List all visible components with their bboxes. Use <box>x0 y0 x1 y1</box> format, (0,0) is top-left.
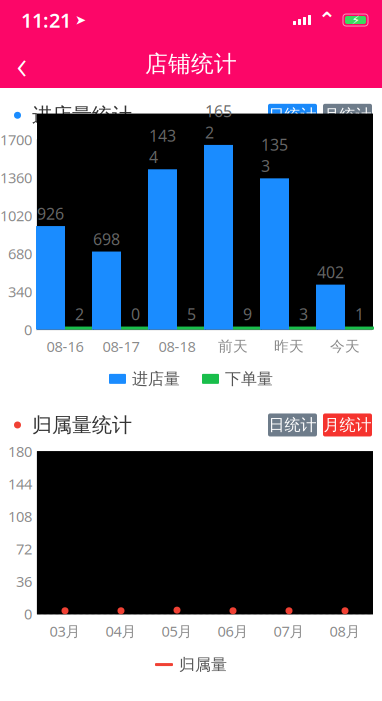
staticText: 0 <box>131 303 140 324</box>
staticText: 店铺统计 <box>145 50 237 78</box>
staticText: 07月 <box>273 621 304 641</box>
staticText: ⚡︎ <box>351 13 359 27</box>
staticText: 月统计 <box>323 105 371 125</box>
staticText: 03月 <box>49 621 80 641</box>
button[interactable]: Back <box>0 42 44 86</box>
staticText: 0 <box>24 604 32 623</box>
staticText: 1 <box>355 303 364 324</box>
button[interactable]: 日统计 <box>268 413 317 436</box>
staticText: 08-17 <box>102 337 139 356</box>
staticText: 72 <box>16 539 32 558</box>
staticText: 680 <box>8 244 32 263</box>
staticText: 0 <box>24 320 32 339</box>
staticText: 06月 <box>217 621 248 641</box>
staticText: 进店量统计 <box>32 103 132 128</box>
staticText: 日统计 <box>268 105 316 125</box>
staticText: 08-16 <box>46 337 83 356</box>
staticText: 926 <box>37 203 64 224</box>
staticText: ⌃ <box>318 8 336 32</box>
staticText: 04月 <box>105 621 136 641</box>
staticText: 11:21 <box>21 7 71 33</box>
staticText: 1020 <box>0 206 32 225</box>
staticText: 进店量 <box>132 369 180 389</box>
button[interactable]: 月统计 <box>323 413 372 436</box>
staticText: 08-18 <box>158 337 195 356</box>
staticText: 昨天 <box>274 337 304 355</box>
staticText: 归属量 <box>179 655 227 674</box>
staticText: 1652 <box>205 100 232 143</box>
staticText: ➤ <box>75 12 86 27</box>
staticText: 180 <box>8 441 32 461</box>
staticText: 下单量 <box>225 369 273 389</box>
staticText: 1353 <box>261 134 288 176</box>
staticText: 698 <box>93 228 120 249</box>
staticText: 1700 <box>0 130 32 149</box>
staticText: 36 <box>16 571 32 591</box>
staticText: ‹ <box>16 37 27 90</box>
staticText: 1360 <box>0 168 32 187</box>
staticText: 今天 <box>330 337 360 355</box>
staticText: 9 <box>243 303 252 324</box>
button[interactable]: 日统计 <box>268 104 317 127</box>
staticText: 1434 <box>149 125 176 167</box>
staticText: 144 <box>8 474 32 493</box>
staticText: 前天 <box>218 337 248 355</box>
staticText: 08月 <box>329 621 360 641</box>
staticText: 日统计 <box>268 415 316 435</box>
staticText: 108 <box>8 506 32 526</box>
staticText: 2 <box>75 303 84 324</box>
button[interactable]: 月统计 <box>323 104 372 127</box>
staticText: 归属量统计 <box>32 413 132 437</box>
staticText: 340 <box>8 282 32 301</box>
staticText: 05月 <box>161 621 192 641</box>
staticText: 402 <box>317 261 344 283</box>
staticText: 3 <box>299 303 308 324</box>
staticText: 5 <box>187 303 196 324</box>
staticText: 月统计 <box>323 415 371 435</box>
